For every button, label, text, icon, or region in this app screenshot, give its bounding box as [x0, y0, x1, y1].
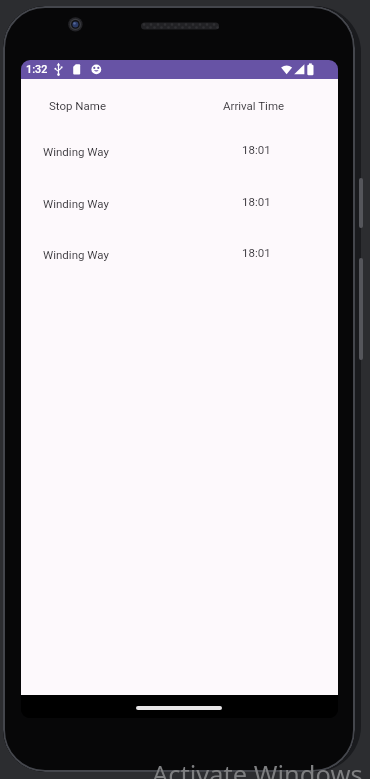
staticText: Winding Way	[43, 248, 109, 261]
staticText: 1:32	[26, 63, 48, 76]
staticText: 18:01	[242, 195, 271, 208]
button[interactable]: Winding Way	[21, 244, 141, 264]
button[interactable]: 18:01	[191, 191, 321, 211]
button[interactable]: Winding Way	[21, 193, 141, 213]
button[interactable]: 18:01	[191, 242, 321, 262]
staticText: Winding Way	[43, 145, 109, 158]
button[interactable]: Winding Way	[21, 141, 141, 161]
button[interactable]: 18:01	[191, 139, 321, 159]
staticText: 18:01	[242, 143, 271, 156]
staticText: Stop Name	[49, 99, 106, 112]
button[interactable]	[136, 706, 222, 710]
staticText: Winding Way	[43, 197, 109, 210]
staticText: Activate Windows	[152, 757, 363, 779]
staticText: 18:01	[242, 246, 271, 259]
staticText: Arrival Time	[223, 99, 285, 112]
